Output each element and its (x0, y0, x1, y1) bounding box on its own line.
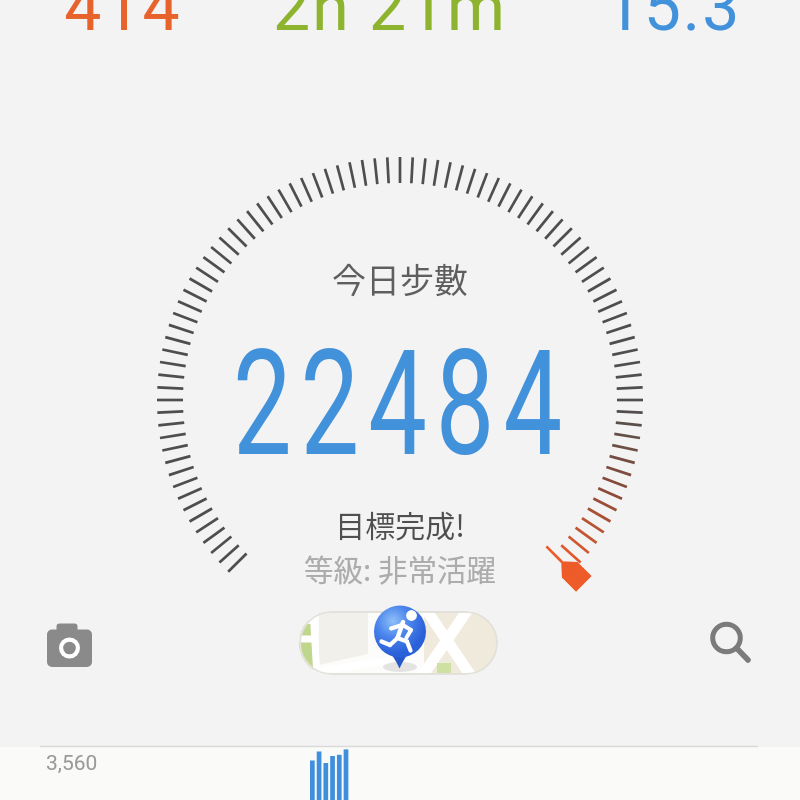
staticText: 22484 (116, 319, 688, 490)
staticText: 目標完成! (0, 502, 800, 545)
staticText: 3,560 (46, 751, 98, 776)
staticText: 等級: 非常活躍 (0, 547, 800, 590)
staticText: 414 (0, 0, 273, 46)
button[interactable] (299, 611, 498, 675)
staticText: 2h 21m (240, 0, 540, 46)
button[interactable] (40, 617, 100, 673)
staticText: 今日步數 (0, 254, 800, 303)
staticText: 15.3 (523, 0, 800, 46)
button[interactable] (702, 615, 758, 671)
